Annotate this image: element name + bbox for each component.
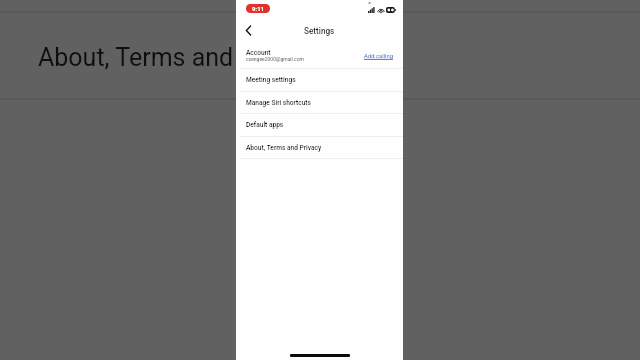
staticText: Manage Siri shortcuts [246,99,311,107]
button[interactable]: About, Terms and Privacy [236,136,403,159]
staticText: csengee2000@gmail.com [246,56,304,62]
button[interactable]: Account [236,45,403,68]
staticText: Account [246,49,271,57]
staticText: About, Terms and Privacy [246,144,322,152]
staticText: Add calling [364,53,394,60]
button[interactable]: Default apps [236,113,403,136]
staticText: 9:11 [252,5,265,12]
button[interactable]: Manage Siri shortcuts [236,91,403,114]
button[interactable]: Meeting settings [236,68,403,91]
button[interactable]: Recording 9:11 [246,4,270,13]
button[interactable]: Add calling [364,53,394,61]
staticText: Meeting settings [246,76,296,84]
button[interactable]: Back [240,22,256,38]
staticText: Default apps [246,121,284,129]
staticText: Settings [304,26,335,36]
staticText: About, Terms and Privacy [38,43,321,72]
